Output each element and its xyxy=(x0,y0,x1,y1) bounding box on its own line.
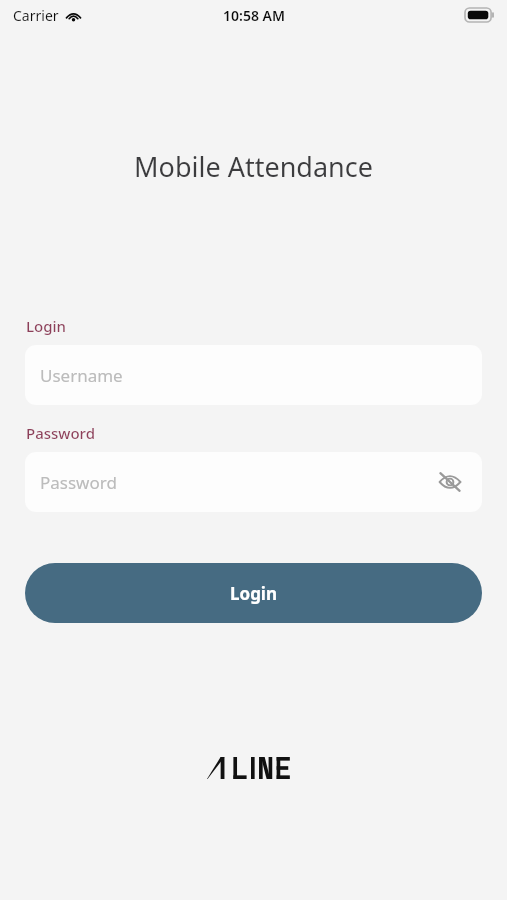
staticText: Password xyxy=(26,423,95,443)
staticText: Carrier xyxy=(13,6,59,25)
other: ALINE logo xyxy=(207,757,301,779)
staticText: Username xyxy=(40,364,123,387)
staticText: 10:58 AM xyxy=(223,6,285,25)
button[interactable]: Login xyxy=(25,563,482,623)
staticText: Login xyxy=(230,582,278,605)
button[interactable]: Show password xyxy=(433,465,467,499)
staticText: Mobile Attendance xyxy=(0,148,507,185)
staticText: Login xyxy=(26,316,66,336)
button[interactable]: Password xyxy=(25,452,482,512)
staticText: Password xyxy=(40,471,117,494)
button[interactable]: Username xyxy=(25,345,482,405)
